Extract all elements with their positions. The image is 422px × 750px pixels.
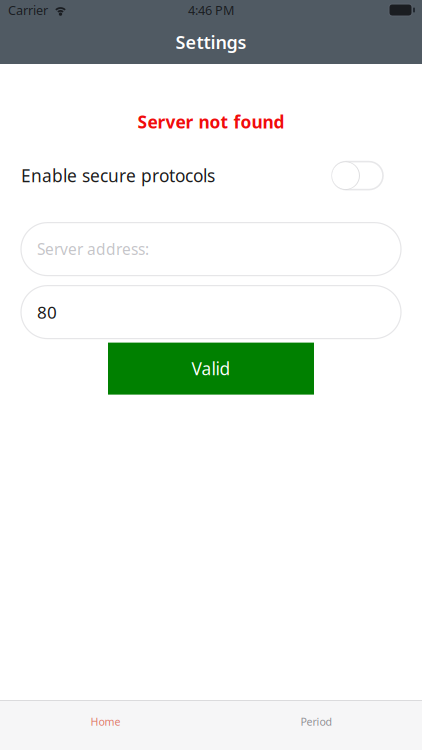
button[interactable]: Server address: — [21, 223, 401, 276]
button[interactable]: Home — [0, 701, 211, 750]
staticText: Home — [90, 714, 120, 729]
staticText: Settings — [175, 30, 246, 54]
button[interactable]: Valid — [108, 343, 314, 395]
button[interactable]: Period — [211, 701, 422, 750]
button[interactable]: 80 — [21, 286, 401, 339]
button[interactable]: Enable secure protocols — [332, 162, 383, 190]
staticText: Period — [300, 714, 332, 729]
staticText: Server address: — [37, 239, 149, 260]
staticText: Server not found — [137, 110, 284, 134]
staticText: Valid — [191, 357, 230, 380]
staticText: 80 — [37, 300, 57, 324]
staticText: 4:46 PM — [188, 1, 234, 19]
staticText: Enable secure protocols — [21, 164, 215, 187]
staticText: Carrier — [8, 1, 48, 19]
